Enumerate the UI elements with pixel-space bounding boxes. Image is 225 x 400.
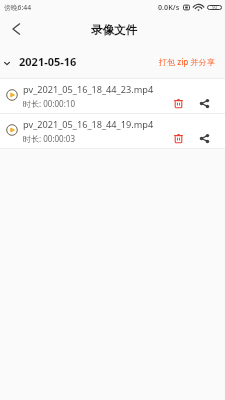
staticText: 时长: 00:00:10 — [23, 98, 75, 109]
staticText: pv_2021_05_16_18_44_23.mp4 — [23, 83, 154, 96]
button[interactable]: 打包 zip 并分享 — [153, 51, 225, 72]
staticText: 打包 zip 并分享 — [159, 56, 215, 67]
staticText: 傍晚6:44 — [4, 3, 32, 12]
staticText: 时长: 00:00:03 — [23, 133, 75, 144]
button[interactable]: Delete — [171, 132, 186, 145]
button[interactable]: Delete — [171, 97, 186, 110]
button[interactable]: Share — [198, 97, 211, 110]
button[interactable]: pv_2021_05_16_18_44_19.mp4 — [0, 114, 225, 148]
staticText: 录像文件 — [91, 23, 137, 37]
button[interactable]: pv_2021_05_16_18_44_23.mp4 — [0, 79, 225, 113]
button[interactable]: Share — [198, 132, 211, 145]
staticText: pv_2021_05_16_18_44_19.mp4 — [23, 118, 154, 131]
button[interactable]: Collapse group — [0, 50, 18, 72]
button[interactable]: Back — [0, 14, 30, 44]
staticText: 2021-05-16 — [19, 54, 77, 69]
staticText: 90 — [212, 4, 218, 10]
staticText: 0.0K/s — [158, 2, 180, 12]
